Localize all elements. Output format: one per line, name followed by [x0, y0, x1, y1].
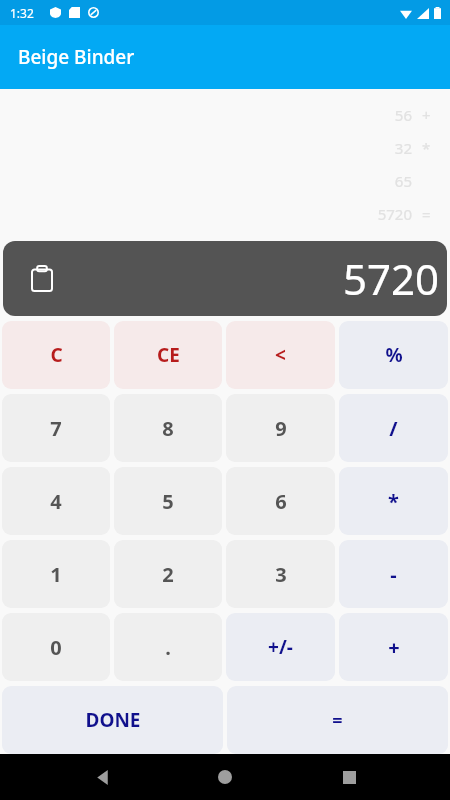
button[interactable]: =	[227, 686, 448, 754]
staticText: 4	[50, 488, 62, 515]
button[interactable]: 0	[2, 613, 110, 681]
staticText: -	[390, 561, 397, 588]
button[interactable]: 3	[226, 540, 335, 608]
staticText: CE	[157, 342, 180, 368]
button[interactable]: 2	[114, 540, 222, 608]
staticText: C	[50, 342, 63, 368]
staticText: Beige Binder	[18, 44, 135, 70]
staticText: 5720	[377, 204, 412, 224]
button[interactable]: %	[339, 321, 448, 389]
button[interactable]: 8	[114, 394, 222, 462]
staticText: 0	[50, 634, 62, 661]
button[interactable]: +/-	[226, 613, 335, 681]
staticText: /	[389, 415, 398, 442]
staticText: 5720	[343, 250, 440, 307]
staticText: 1	[50, 561, 62, 588]
staticText: *	[422, 138, 431, 158]
staticText: 5	[162, 488, 174, 515]
staticText: =	[422, 204, 431, 224]
staticText: 3	[275, 561, 287, 588]
staticText: 7	[50, 415, 62, 442]
button[interactable]: <	[226, 321, 335, 389]
button[interactable]: Recent apps	[327, 755, 371, 799]
staticText: +/-	[268, 634, 293, 660]
button[interactable]: Copy to clipboard	[31, 266, 53, 292]
staticText: .	[165, 634, 171, 661]
staticText: 6	[275, 488, 287, 515]
staticText: 9	[275, 415, 287, 442]
staticText: *	[388, 488, 399, 515]
staticText: 2	[162, 561, 174, 588]
staticText: +	[388, 634, 400, 661]
button[interactable]: .	[114, 613, 222, 681]
staticText: 32	[394, 138, 412, 158]
button[interactable]: 6	[226, 467, 335, 535]
staticText: 8	[162, 415, 174, 442]
staticText: 1:32	[10, 5, 34, 21]
button[interactable]: +	[339, 613, 448, 681]
button[interactable]: *	[339, 467, 448, 535]
button[interactable]: 9	[226, 394, 335, 462]
button[interactable]: Copy to clipboard	[3, 241, 447, 316]
button[interactable]: 4	[2, 467, 110, 535]
button[interactable]: 1	[2, 540, 110, 608]
button[interactable]: DONE	[2, 686, 223, 754]
staticText: %	[385, 342, 403, 368]
button[interactable]: 7	[2, 394, 110, 462]
button[interactable]: C	[2, 321, 110, 389]
staticText: =	[332, 708, 343, 733]
staticText: <	[275, 342, 286, 368]
button[interactable]: /	[339, 394, 448, 462]
staticText: 56	[394, 105, 412, 125]
button[interactable]: Back	[80, 755, 124, 799]
button[interactable]: 5	[114, 467, 222, 535]
button[interactable]: Home	[203, 755, 247, 799]
button[interactable]: -	[339, 540, 448, 608]
button[interactable]: CE	[114, 321, 222, 389]
staticText: DONE	[85, 707, 141, 733]
staticText: 65	[394, 171, 412, 191]
staticText: +	[422, 105, 431, 125]
